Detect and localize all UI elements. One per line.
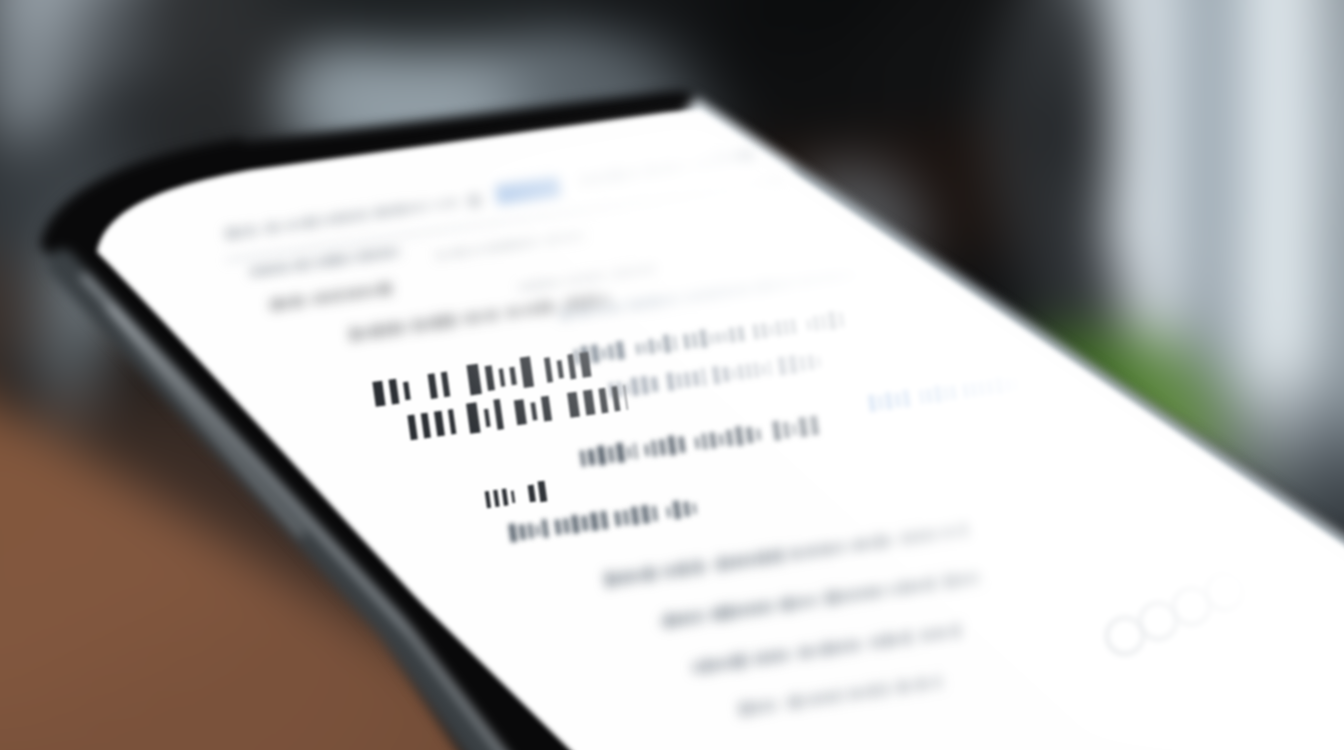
button[interactable]: Smartphone on a desk	[0, 0, 1344, 750]
